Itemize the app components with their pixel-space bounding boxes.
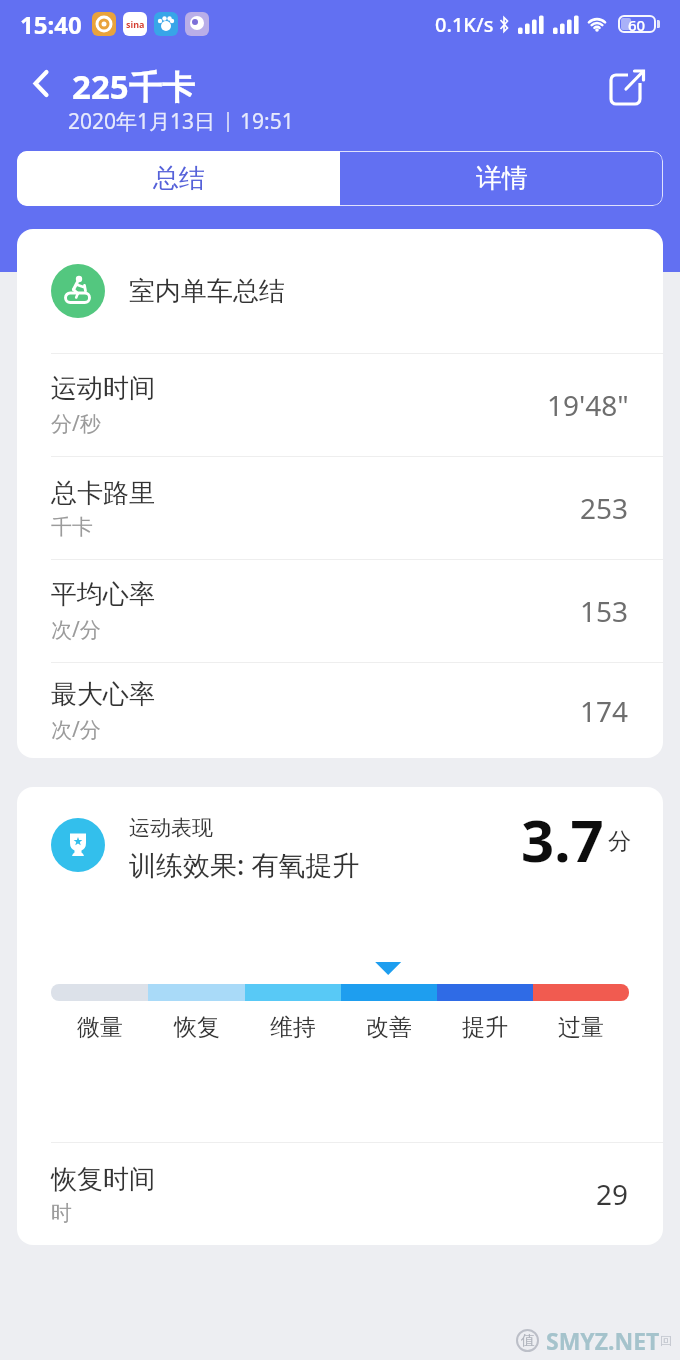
staticText: 室内单车总结	[129, 275, 285, 308]
staticText: 0.1K/s	[435, 11, 494, 38]
staticText: 恢复	[174, 1013, 220, 1042]
staticText: 微量	[77, 1013, 123, 1042]
staticText: 详情	[476, 162, 528, 195]
staticText: 运动表现	[129, 815, 213, 841]
staticText: 分/秒	[51, 409, 101, 438]
staticText: 改善	[366, 1013, 412, 1042]
button[interactable]: 总结	[17, 151, 340, 206]
button[interactable]: 室内单车总结	[51, 229, 663, 353]
staticText: 29	[596, 1175, 629, 1213]
staticText: 3.7	[521, 800, 604, 879]
staticText: sina	[126, 18, 145, 30]
staticText: 时	[51, 1200, 72, 1226]
button[interactable]: 225千卡	[72, 64, 195, 109]
staticText: 分	[608, 827, 631, 856]
staticText: SMYZ.NET	[546, 1325, 660, 1356]
staticText: 总卡路里	[51, 477, 155, 510]
staticText: 次/分	[51, 615, 101, 644]
staticText: 次/分	[51, 715, 101, 744]
button[interactable]	[20, 60, 64, 106]
staticText: 平均心率	[51, 578, 155, 611]
button[interactable]: 运动时间	[17, 353, 663, 456]
button[interactable]	[604, 62, 654, 110]
button[interactable]: 详情	[340, 151, 663, 206]
staticText: 60	[628, 15, 646, 33]
button[interactable]: 平均心率	[17, 559, 663, 662]
staticText: 过量	[558, 1013, 604, 1042]
staticText: 值	[521, 1332, 535, 1350]
staticText: 253	[580, 489, 629, 527]
staticText: 训练效果: 有氧提升	[129, 846, 360, 883]
staticText: 回	[660, 1333, 672, 1348]
button[interactable]: 总卡路里	[17, 456, 663, 559]
button[interactable]: 恢复时间	[17, 1142, 663, 1245]
button[interactable]: 最大心率	[17, 662, 663, 758]
staticText: 19'48"	[547, 386, 629, 424]
staticText: 2020年1月13日	[68, 107, 216, 136]
staticText: 15:40	[20, 8, 82, 41]
staticText: 提升	[462, 1013, 508, 1042]
staticText: 174	[580, 692, 629, 730]
staticText: 恢复时间	[51, 1163, 155, 1196]
staticText: 总结	[153, 162, 205, 195]
staticText: 最大心率	[51, 678, 155, 711]
staticText: 运动时间	[51, 372, 155, 405]
staticText: 维持	[270, 1013, 316, 1042]
staticText: 153	[580, 592, 629, 630]
button[interactable]: 运动表现	[17, 787, 663, 905]
staticText: 19:51	[240, 107, 294, 136]
staticText: 千卡	[51, 514, 93, 540]
